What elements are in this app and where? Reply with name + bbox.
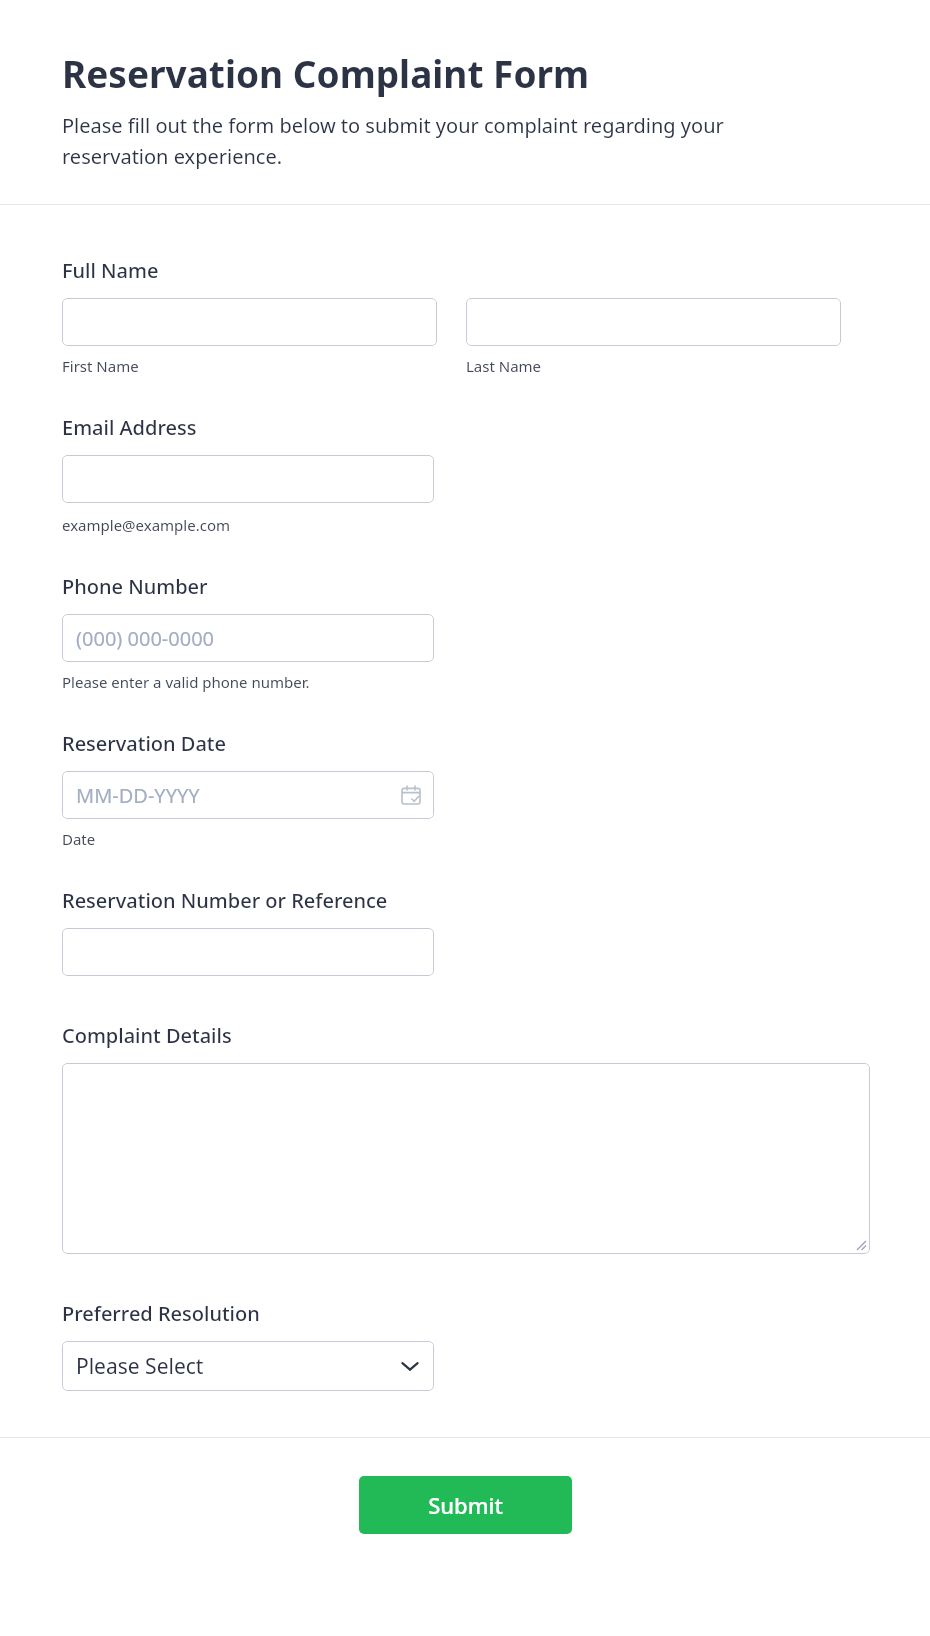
staticText: Please fill out the form below to submit… [62, 112, 807, 169]
staticText: MM-DD-YYYY [76, 782, 200, 809]
staticText: Please Select [76, 1352, 204, 1381]
button[interactable]: (000) 000-0000 [62, 614, 434, 662]
button[interactable]: Submit [359, 1476, 572, 1534]
staticText: Reservation Number or Reference [62, 887, 388, 914]
other: Pick date [402, 786, 420, 804]
staticText: Date [62, 829, 96, 849]
staticText: Reservation Complaint Form [62, 48, 590, 98]
staticText: Submit [428, 1490, 503, 1520]
button[interactable] [62, 455, 434, 503]
staticText: Full Name [62, 257, 159, 284]
button[interactable]: MM-DD-YYYY [62, 771, 434, 819]
button[interactable] [62, 928, 434, 976]
staticText: Preferred Resolution [62, 1300, 260, 1327]
button[interactable] [62, 298, 437, 346]
staticText: Email Address [62, 414, 197, 441]
button[interactable] [466, 298, 841, 346]
staticText: example@example.com [62, 515, 230, 535]
staticText: Complaint Details [62, 1022, 232, 1049]
other: Open dropdown [400, 1356, 420, 1376]
button[interactable]: Please Select [62, 1341, 434, 1391]
staticText: First Name [62, 356, 139, 376]
staticText: Phone Number [62, 573, 208, 600]
staticText: Please enter a valid phone number. [62, 672, 310, 692]
staticText: (000) 000-0000 [76, 625, 215, 652]
staticText: Last Name [466, 356, 542, 376]
button[interactable] [62, 1063, 870, 1254]
staticText: Reservation Date [62, 730, 226, 757]
